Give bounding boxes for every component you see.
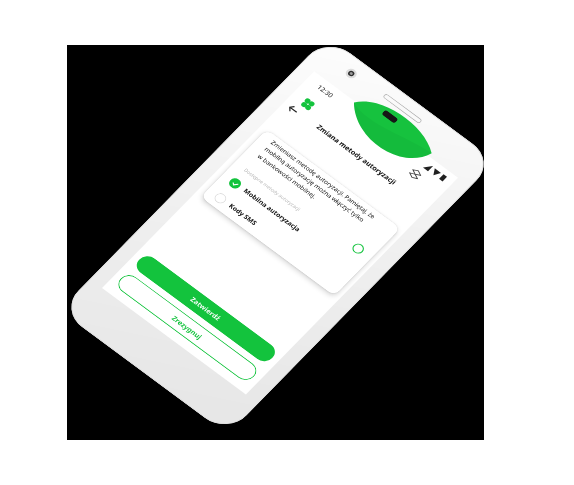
staticText: Zrezygnuj <box>170 314 205 341</box>
staticText: Kody SMS <box>226 202 259 228</box>
button[interactable]: Kody SMS <box>209 188 345 292</box>
staticText: Zatwierdź <box>188 295 223 322</box>
button[interactable]: Back <box>280 98 305 120</box>
staticText: Zmiana metody autoryzacji <box>315 122 399 186</box>
staticText: Mobilna autoryzacja <box>241 187 302 234</box>
button[interactable]: Zrezygnuj <box>114 271 261 384</box>
staticText: 12:30 <box>315 83 335 100</box>
staticText: Dostępne metody autoryzacji <box>243 167 303 212</box>
staticText: Zmieniasz metodę autoryzacji. Pamiętaj, … <box>256 139 378 234</box>
button[interactable]: Zatwierdź <box>132 252 279 365</box>
button[interactable]: Help <box>350 241 367 256</box>
button[interactable]: My documents <box>404 164 426 184</box>
button[interactable]: Mobilna autoryzacja <box>224 173 360 277</box>
